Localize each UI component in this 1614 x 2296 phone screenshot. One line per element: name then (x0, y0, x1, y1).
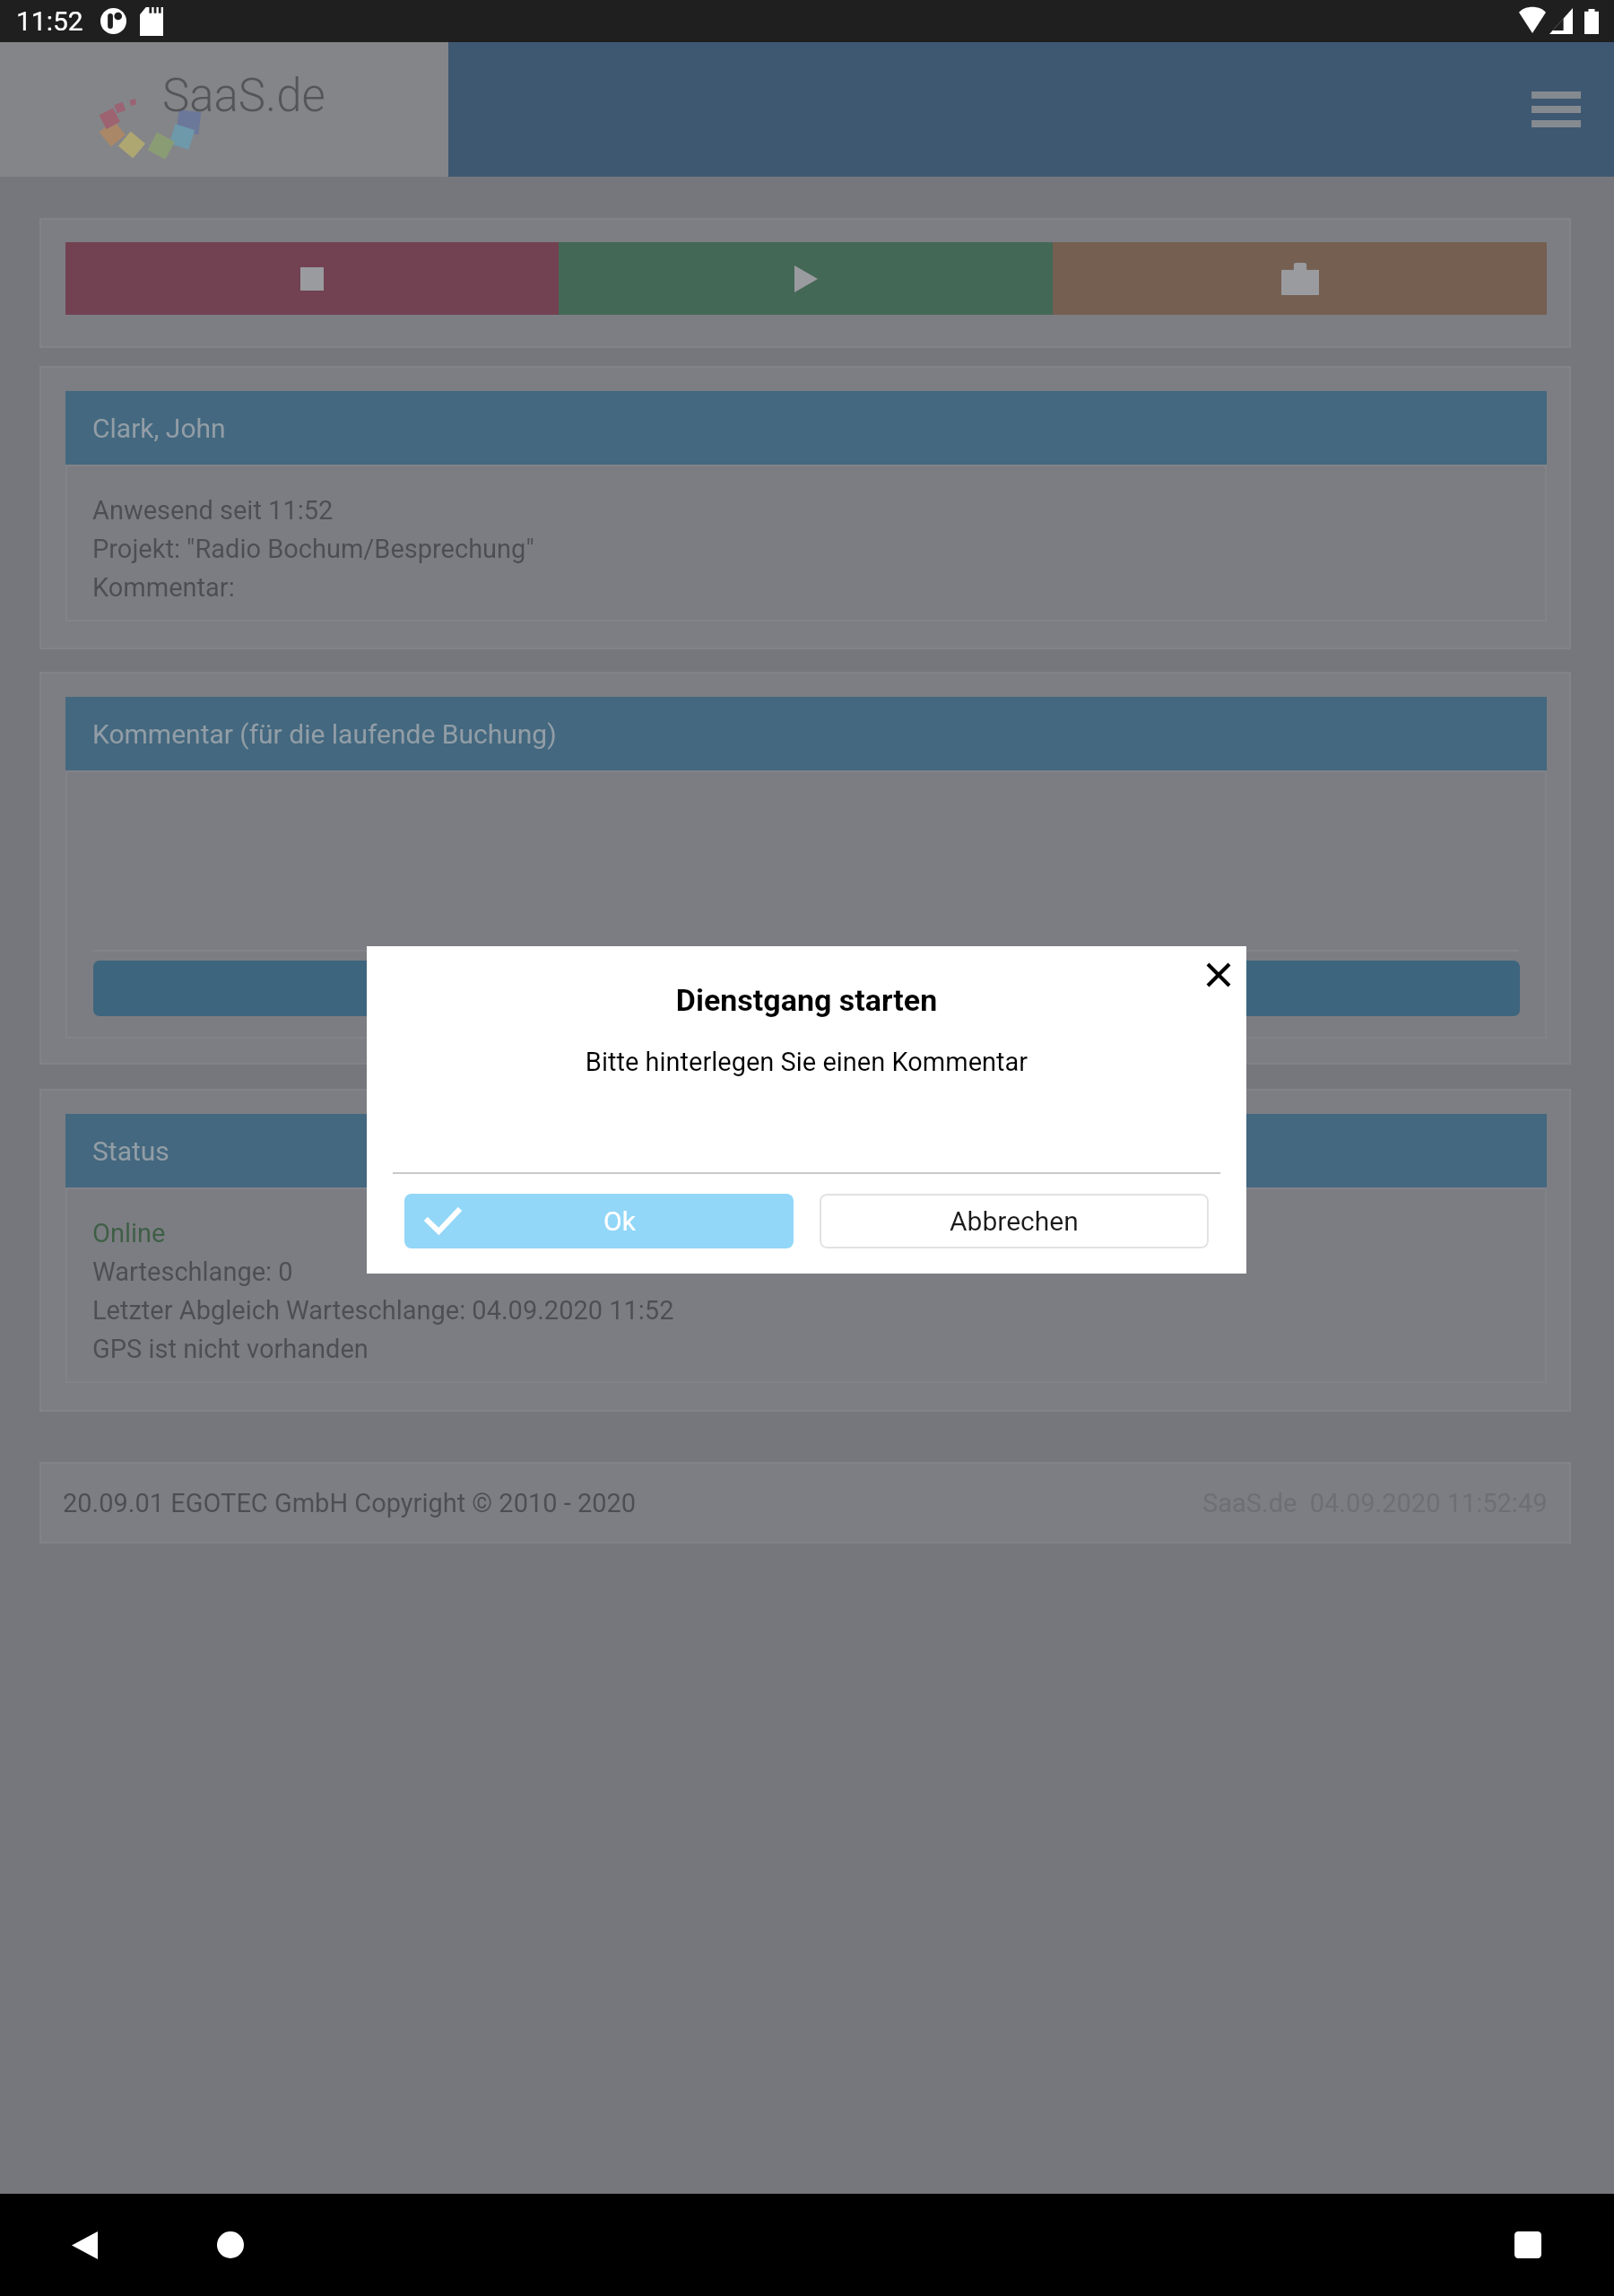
button[interactable]: Ok (404, 1194, 794, 1248)
staticText: SaaS.de 04.09.2020 11:52:49 (1202, 1488, 1548, 1518)
staticText: Anwesend seit 11:52 (92, 495, 334, 534)
button[interactable]: Home (195, 2209, 266, 2281)
button[interactable]: Dienstgang (1053, 242, 1547, 315)
staticText: Ok (603, 1205, 636, 1237)
button[interactable]: Abbrechen (820, 1194, 1209, 1248)
button[interactable]: Menu (1513, 66, 1599, 152)
staticText: Dienstgang starten (367, 982, 1246, 1018)
button[interactable]: Recents (1492, 2209, 1564, 2281)
staticText: Kommentar: (92, 572, 235, 611)
staticText: SaaS.de (162, 69, 325, 123)
staticText: Clark, John (92, 413, 226, 444)
button[interactable]: Back (48, 2209, 120, 2281)
staticText: Kommentar (für die laufende Buchung) (92, 718, 557, 750)
staticText: GPS ist nicht vorhanden (92, 1334, 369, 1372)
button[interactable]: Close (1190, 946, 1247, 1004)
staticText: Warteschlange: 0 (92, 1257, 293, 1295)
staticText: Letzter Abgleich Warteschlange: 04.09.20… (92, 1295, 674, 1334)
staticText: 20.09.01 EGOTEC GmbH Copyright © 2010 - … (63, 1488, 637, 1518)
staticText: Abbrechen (950, 1205, 1079, 1237)
staticText: Bitte hinterlegen Sie einen Kommentar (367, 1047, 1246, 1077)
button[interactable]: Buchung beenden (65, 242, 559, 315)
staticText: Online (92, 1218, 166, 1257)
staticText: Status (92, 1135, 169, 1167)
button[interactable]: Kommentar speichern (93, 961, 1520, 1016)
staticText: 11:52 (16, 5, 83, 37)
button[interactable]: Buchung starten (559, 242, 1053, 315)
staticText: Projekt: "Radio Bochum/Besprechung" (92, 534, 534, 572)
